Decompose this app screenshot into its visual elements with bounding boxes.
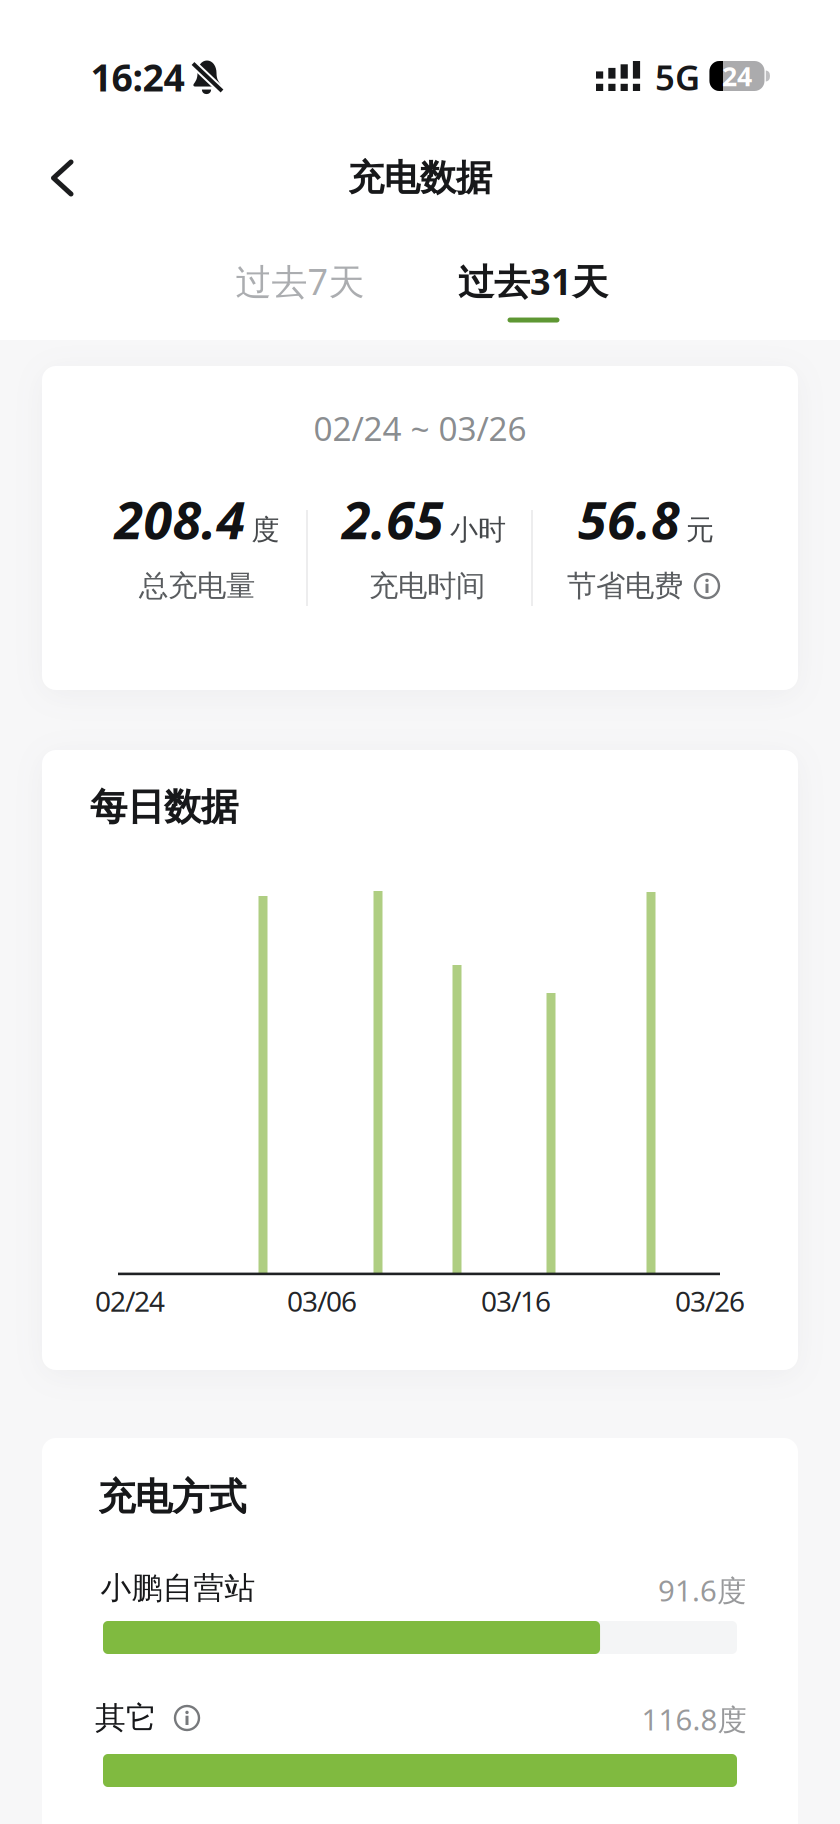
staticText: 03/26 <box>675 1282 745 1320</box>
staticText: 过去31天 <box>458 257 608 305</box>
staticText: 度 <box>251 513 279 547</box>
staticText: 5G <box>655 54 700 100</box>
staticText: 小鹏自营站 <box>100 1569 255 1607</box>
staticText: 充电数据 <box>348 156 492 200</box>
staticText: 208.4 <box>114 484 245 554</box>
staticText: 02/24 <box>95 1282 165 1320</box>
staticText: 元 <box>686 513 714 547</box>
staticText: 充电方式 <box>98 1474 246 1520</box>
staticText: 56.8 <box>578 484 680 554</box>
staticText: 充电时间 <box>369 568 485 604</box>
staticText: 节省电费 <box>567 568 683 604</box>
staticText: 91.6度 <box>658 1570 746 1609</box>
button[interactable]: 返回 <box>34 148 90 207</box>
staticText: 24 <box>722 58 752 94</box>
staticText: 03/16 <box>481 1282 551 1320</box>
staticText: 每日数据 <box>90 784 238 830</box>
staticText: 16:24 <box>90 52 184 102</box>
button[interactable]: 过去31天 <box>440 247 626 315</box>
button[interactable]: 过去7天 <box>217 247 382 315</box>
staticText: 总充电量 <box>139 568 255 604</box>
staticText: 过去7天 <box>235 257 364 305</box>
staticText: 116.8度 <box>641 1699 746 1738</box>
staticText: 02/24 ~ 03/26 <box>313 406 526 450</box>
staticText: 其它 <box>95 1699 157 1737</box>
button[interactable]: 节省电费说明 <box>693 572 721 600</box>
staticText: 小时 <box>450 513 506 547</box>
staticText: 03/06 <box>287 1282 357 1320</box>
staticText: 2.65 <box>342 484 444 554</box>
button[interactable]: 其它说明 <box>173 1704 201 1732</box>
